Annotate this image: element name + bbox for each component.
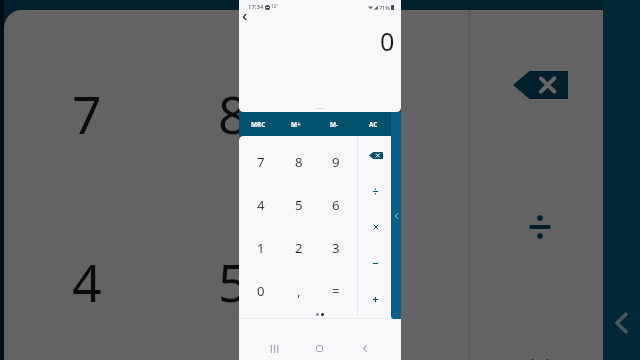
button[interactable]: M+ (277, 112, 315, 136)
staticText: M- (330, 120, 339, 129)
button[interactable]: 9 (306, 30, 452, 198)
staticText: 8 (218, 79, 248, 150)
button[interactable]: 5 (280, 183, 317, 226)
button[interactable]: 7 (14, 30, 160, 198)
staticText: 6 (332, 196, 340, 214)
staticText: , (297, 282, 301, 300)
staticText: 4 (257, 196, 265, 214)
staticText: AC (369, 120, 378, 129)
button[interactable]: Divide (358, 173, 393, 209)
staticText: 5 (218, 247, 248, 318)
staticText: 7 (257, 153, 265, 171)
staticText: 8 (295, 153, 303, 171)
staticText: 3 (332, 239, 340, 257)
button[interactable]: Back (239, 14, 251, 24)
button[interactable]: 3 (317, 226, 354, 269)
staticText: 6 (364, 247, 394, 318)
staticText: 5 (295, 196, 303, 214)
button[interactable]: Back (342, 319, 388, 360)
staticText: 12° (271, 3, 279, 9)
button[interactable]: Backspace (358, 137, 393, 173)
button[interactable]: 4 (14, 198, 160, 360)
button[interactable]: Backspace (472, 14, 608, 156)
staticText: 2 (295, 239, 303, 257)
button[interactable]: Multiply (472, 298, 608, 360)
button[interactable]: M+ (154, 0, 305, 10)
button[interactable]: M- (305, 0, 456, 10)
button[interactable]: Subtract (358, 245, 393, 281)
staticText: 4 (72, 247, 102, 318)
button[interactable]: MRC (239, 112, 277, 136)
staticText: 9 (332, 153, 340, 171)
button[interactable]: 9 (317, 141, 354, 183)
staticText: = (332, 282, 340, 300)
button[interactable]: 6 (317, 183, 354, 226)
staticText: 0 (257, 282, 265, 300)
button[interactable]: 2 (280, 226, 317, 269)
button[interactable]: 8 (160, 30, 306, 198)
button[interactable]: 7 (242, 141, 280, 183)
button[interactable]: 0 (242, 269, 280, 312)
button[interactable]: Open panel (603, 0, 640, 360)
button[interactable]: = (317, 269, 354, 312)
staticText: M+ (291, 120, 301, 129)
button[interactable]: Recent apps (251, 319, 296, 360)
staticText: 7 (72, 79, 102, 150)
button[interactable]: 6 (306, 198, 452, 360)
staticText: 1 (257, 239, 265, 257)
button[interactable]: Divide (472, 156, 608, 298)
staticText: 17:34 (248, 3, 264, 11)
button[interactable]: 4 (242, 183, 280, 226)
button[interactable]: Open panel (391, 112, 401, 319)
staticText: 0 (380, 24, 395, 58)
button[interactable]: 8 (280, 141, 317, 183)
staticText: 71% (379, 4, 390, 11)
button[interactable]: , (280, 269, 317, 312)
button[interactable]: Home (296, 319, 342, 360)
button[interactable]: M- (315, 112, 354, 136)
button[interactable]: Add (358, 281, 393, 317)
staticText: MRC (251, 120, 266, 129)
staticText: 9 (364, 79, 394, 150)
button[interactable]: Multiply (358, 209, 393, 245)
button[interactable]: 5 (160, 198, 306, 360)
button[interactable]: 1 (242, 226, 280, 269)
button[interactable]: AC (354, 112, 393, 136)
